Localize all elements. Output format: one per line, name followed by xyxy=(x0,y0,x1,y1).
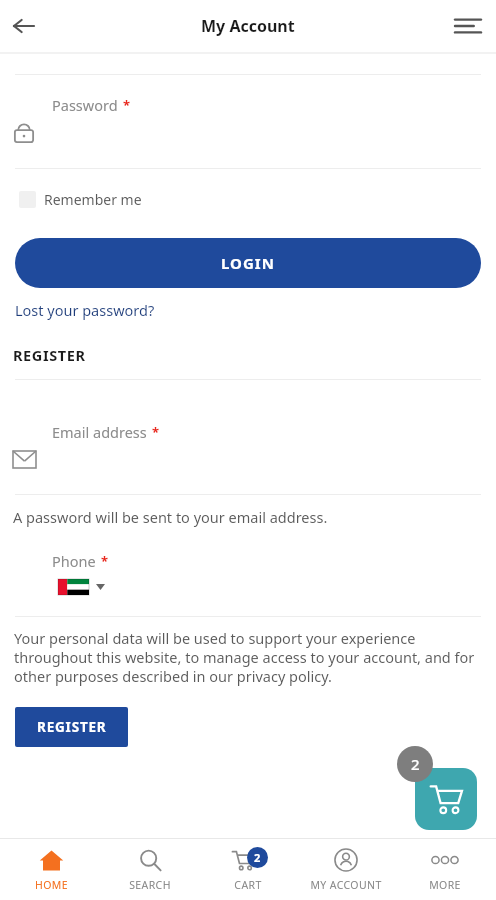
staticText: A password will be sent to your email ad… xyxy=(13,507,328,527)
staticText: SEARCH xyxy=(129,878,171,892)
button[interactable]: MY ACCOUNT xyxy=(299,839,393,900)
button[interactable]: HOME xyxy=(4,839,98,900)
button[interactable]: Menu xyxy=(446,4,490,48)
staticText: Your personal data will be used to suppo… xyxy=(14,628,482,687)
staticText: * xyxy=(123,96,131,114)
staticText: HOME xyxy=(35,878,68,892)
staticText: MORE xyxy=(429,878,461,892)
button[interactable]: Remember me xyxy=(0,190,496,209)
button[interactable]: SEARCH xyxy=(103,839,197,900)
staticText: REGISTER xyxy=(13,345,86,365)
button[interactable] xyxy=(58,579,105,595)
staticText: Email address xyxy=(52,422,147,442)
staticText: 2 xyxy=(411,754,420,774)
button[interactable]: Back xyxy=(2,4,46,48)
staticText: CART xyxy=(234,878,262,892)
button[interactable]: REGISTER xyxy=(15,707,128,747)
staticText: Password xyxy=(52,95,118,115)
button[interactable]: 2 xyxy=(201,839,295,900)
staticText: MY ACCOUNT xyxy=(310,878,382,892)
staticText: Lost your password? xyxy=(15,300,155,320)
staticText: Phone xyxy=(52,551,96,571)
button[interactable]: Lost your password? xyxy=(15,300,155,320)
button[interactable]: MORE xyxy=(398,839,492,900)
staticText: 2 xyxy=(254,850,261,865)
staticText: My Account xyxy=(201,15,295,37)
staticText: LOGIN xyxy=(221,253,275,273)
staticText: * xyxy=(152,423,160,441)
staticText: * xyxy=(101,552,109,570)
button[interactable]: LOGIN xyxy=(15,238,481,288)
button[interactable]: Cart xyxy=(415,768,477,830)
staticText: Remember me xyxy=(44,190,142,209)
staticText: REGISTER xyxy=(37,718,107,736)
